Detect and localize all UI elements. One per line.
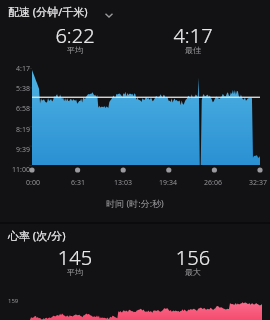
staticText: 145 — [0, 244, 150, 271]
staticText: 6:22 — [0, 22, 150, 49]
staticText: 13:03 — [109, 178, 137, 188]
staticText: 4:17 — [150, 22, 236, 49]
staticText: 6:31 — [64, 178, 92, 188]
staticText: 最佳 — [150, 45, 236, 55]
staticText: 11:00 — [2, 165, 30, 175]
staticText: 156 — [150, 244, 236, 271]
staticText: 配速 (分钟/千米) — [8, 4, 88, 19]
staticText: 6:58 — [2, 104, 30, 114]
staticText: 5:38 — [2, 84, 30, 94]
staticText: 32:37 — [244, 178, 270, 188]
staticText: 9:39 — [2, 145, 30, 155]
staticText: 最大 — [150, 267, 236, 277]
staticText: 心率 (次/分) — [8, 228, 66, 243]
staticText: 19:34 — [154, 178, 182, 188]
button[interactable]: 心率 (次/分) — [0, 224, 270, 246]
staticText: 时间 (时:分:秒) — [0, 197, 270, 209]
button[interactable]: 配速 (分钟/千米) — [0, 0, 270, 24]
staticText: 159 — [8, 297, 19, 305]
staticText: 0:00 — [19, 178, 47, 188]
staticText: 平均 — [0, 267, 150, 277]
staticText: 8:19 — [2, 125, 30, 135]
staticText: 26:06 — [199, 178, 227, 188]
staticText: 4:17 — [2, 64, 30, 74]
staticText: 平均 — [0, 45, 150, 55]
other: Change metric — [104, 10, 114, 20]
